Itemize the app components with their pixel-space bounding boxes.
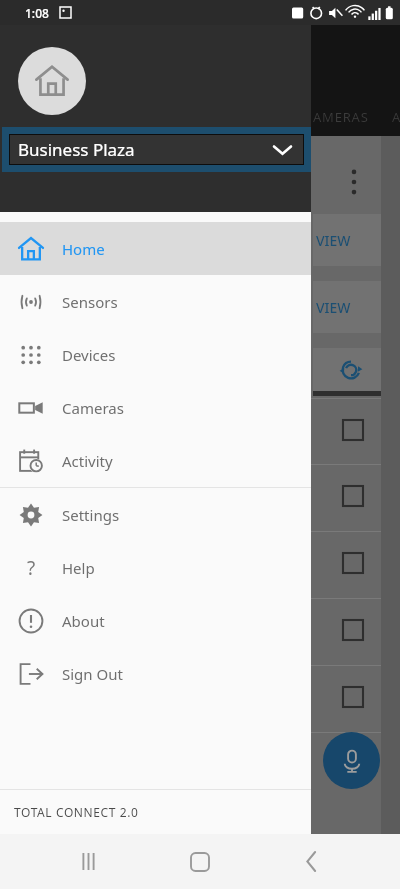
button[interactable]: Sensors [0,275,311,328]
button[interactable]: Settings [0,488,311,541]
button[interactable]: Back [289,834,333,889]
staticText: Help [62,558,95,578]
button[interactable]: Voice command [323,732,380,789]
staticText: Home [62,239,105,259]
staticText: Activity [62,451,113,471]
staticText: Settings [62,505,120,525]
staticText: Devices [62,345,116,365]
staticText: Sign Out [62,664,123,684]
button[interactable]: Activity [0,434,311,487]
staticText: ? [27,555,36,581]
button[interactable]: Recents [66,834,110,889]
staticText: Cameras [62,398,124,418]
button[interactable]: Cameras [0,381,311,434]
button[interactable]: About [0,594,311,647]
staticText: A [392,108,400,126]
button[interactable]: Business Plaza [10,135,303,164]
button[interactable]: Sign Out [0,647,311,700]
staticText: TOTAL CONNECT 2.0 [14,804,139,820]
button[interactable]: Home [178,834,222,889]
staticText: VIEW [316,231,351,250]
staticText: AMERAS [313,108,369,126]
button[interactable]: Home [0,222,311,275]
button[interactable]: Devices [0,328,311,381]
staticText: 1:08 [25,5,49,21]
staticText: Sensors [62,292,118,312]
button[interactable]: Location avatar [18,47,86,115]
staticText: Business Plaza [18,138,135,161]
button[interactable]: ? [0,541,311,594]
staticText: VIEW [316,298,351,317]
staticText: About [62,611,105,631]
